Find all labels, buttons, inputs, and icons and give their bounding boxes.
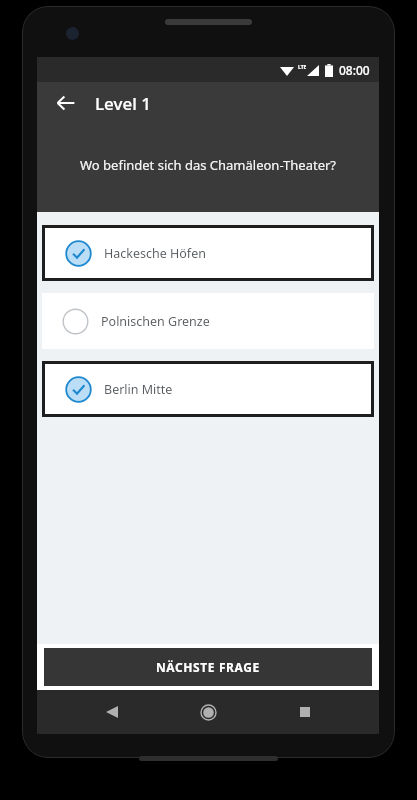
staticText: Wo befindet sich das Chamäleon-Theater? xyxy=(80,156,336,174)
staticText: 08:00 xyxy=(339,62,370,78)
staticText: Level 1 xyxy=(95,92,151,115)
staticText: NÄCHSTE FRAGE xyxy=(156,659,260,675)
button[interactable]: Home xyxy=(186,690,230,734)
staticText: Berlin Mitte xyxy=(104,381,173,398)
button[interactable]: Berlin Mitte xyxy=(45,364,371,414)
button[interactable]: Back xyxy=(90,690,134,734)
button[interactable]: Polnischen Grenze xyxy=(42,293,374,349)
staticText: Hackesche Höfen xyxy=(104,245,206,262)
button[interactable]: Recent apps xyxy=(283,690,327,734)
button[interactable]: Back xyxy=(45,82,87,124)
button[interactable]: NÄCHSTE FRAGE xyxy=(44,648,372,686)
button[interactable]: Hackesche Höfen xyxy=(45,228,371,278)
staticText: LTE xyxy=(298,64,307,71)
staticText: Polnischen Grenze xyxy=(101,313,210,330)
